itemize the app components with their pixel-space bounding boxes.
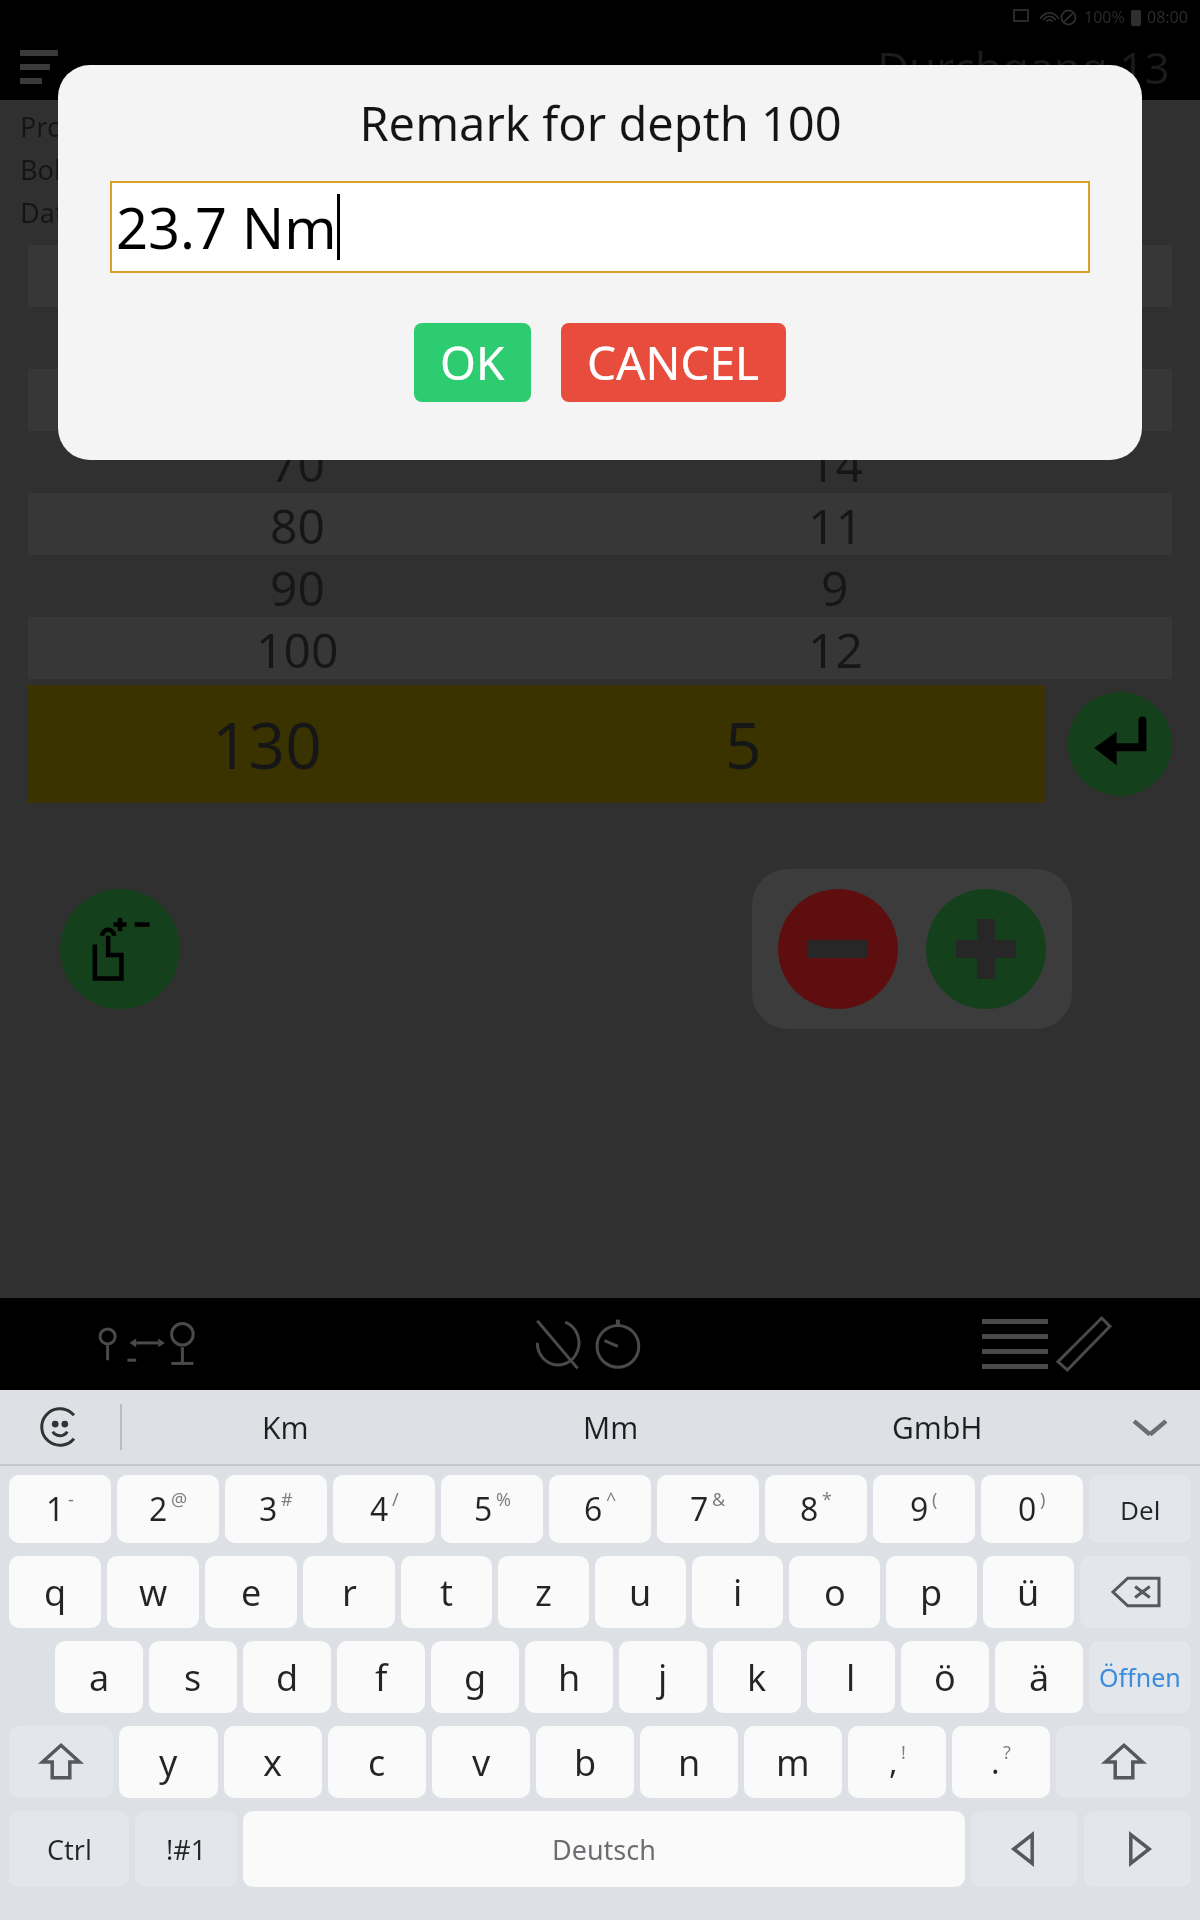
staticText: e	[241, 1568, 262, 1617]
button[interactable]: 2	[117, 1475, 219, 1543]
button[interactable]: OK	[414, 323, 531, 402]
button[interactable]: g	[431, 1641, 519, 1713]
button[interactable]: 8	[765, 1475, 867, 1543]
button[interactable]: 23.7 Nm	[110, 181, 1090, 273]
button[interactable]: ü	[983, 1556, 1074, 1628]
staticText: 3	[259, 1487, 278, 1531]
staticText: b	[574, 1738, 597, 1787]
button[interactable]: Deutsch	[243, 1811, 965, 1887]
staticText: Datum	[20, 194, 107, 231]
button[interactable]: ä	[995, 1641, 1083, 1713]
button[interactable]: Mm	[448, 1390, 774, 1464]
button[interactable]: .	[952, 1726, 1050, 1798]
staticText: 9	[821, 555, 849, 617]
button[interactable]: !#1	[135, 1811, 237, 1887]
button[interactable]: 0	[981, 1475, 1083, 1543]
staticText: 8	[821, 245, 849, 307]
button[interactable]: 130	[28, 685, 1046, 803]
button[interactable]: GmbH	[774, 1390, 1100, 1464]
other: Mute and timer	[535, 1315, 647, 1373]
button[interactable]: ö	[901, 1641, 989, 1713]
staticText: /	[392, 1487, 399, 1512]
button[interactable]: k	[713, 1641, 801, 1713]
button[interactable]: n	[640, 1726, 738, 1798]
button[interactable]: 100	[28, 617, 1172, 679]
staticText: Del	[1120, 1492, 1161, 1527]
button[interactable]: 3	[225, 1475, 327, 1543]
staticText: y	[159, 1738, 178, 1787]
button[interactable]: s	[149, 1641, 237, 1713]
button[interactable]: h	[525, 1641, 613, 1713]
staticText: Probe	[20, 108, 96, 145]
staticText: 7	[690, 1487, 709, 1531]
button[interactable]: u	[595, 1556, 686, 1628]
staticText: h	[558, 1653, 581, 1702]
button[interactable]: b	[536, 1726, 634, 1798]
staticText: Deutsch	[552, 1831, 656, 1868]
button[interactable]: Emoji	[0, 1390, 120, 1464]
staticText: 40	[270, 245, 325, 307]
button[interactable]: r	[303, 1556, 395, 1628]
button[interactable]: ,	[848, 1726, 946, 1798]
button[interactable]: Move left	[971, 1811, 1078, 1887]
button[interactable]: Shift	[9, 1726, 113, 1798]
button[interactable]: l	[807, 1641, 895, 1713]
staticText: 2	[149, 1487, 168, 1531]
staticText: 100%	[1084, 6, 1125, 28]
button[interactable]: Collapse suggestions	[1100, 1390, 1200, 1464]
button[interactable]: 1	[9, 1475, 111, 1543]
button[interactable]: Edit text	[982, 1318, 1110, 1370]
button[interactable]: j	[619, 1641, 707, 1713]
button[interactable]: Del	[1089, 1475, 1191, 1543]
button[interactable]: Backspace	[1080, 1556, 1191, 1628]
button[interactable]: t	[401, 1556, 492, 1628]
button[interactable]: Move right	[1084, 1811, 1191, 1887]
button[interactable]: Km	[122, 1390, 448, 1464]
button[interactable]: c	[328, 1726, 426, 1798]
button[interactable]: 9	[873, 1475, 975, 1543]
button[interactable]: Adjust values	[60, 889, 180, 1009]
button[interactable]: 60	[28, 369, 1172, 431]
button[interactable]: Öffnen	[1089, 1641, 1191, 1713]
button[interactable]: f	[337, 1641, 425, 1713]
button[interactable]: o	[789, 1556, 880, 1628]
button[interactable]: Ctrl	[9, 1811, 129, 1887]
button[interactable]: 6	[549, 1475, 651, 1543]
staticText: m	[776, 1738, 810, 1787]
button[interactable]: v	[432, 1726, 530, 1798]
button[interactable]: Enter	[1068, 692, 1172, 796]
staticText: 6	[584, 1487, 603, 1531]
button[interactable]: y	[119, 1726, 218, 1798]
staticText: n	[678, 1738, 701, 1787]
button[interactable]: Shift	[1056, 1726, 1191, 1798]
button[interactable]: w	[107, 1556, 199, 1628]
button[interactable]: 5	[441, 1475, 543, 1543]
button[interactable]: 40	[28, 245, 1172, 307]
button[interactable]: Increase	[926, 889, 1046, 1009]
staticText: &	[712, 1487, 726, 1512]
staticText: ^	[606, 1487, 617, 1512]
button[interactable]: a	[55, 1641, 143, 1713]
staticText: w	[139, 1568, 168, 1617]
button[interactable]: CANCEL	[561, 323, 786, 402]
staticText: 90	[270, 555, 325, 617]
button[interactable]: i	[692, 1556, 783, 1628]
button[interactable]: q	[9, 1556, 101, 1628]
button[interactable]: 4	[333, 1475, 435, 1543]
button[interactable]: d	[243, 1641, 331, 1713]
button[interactable]: p	[886, 1556, 977, 1628]
button[interactable]: m	[744, 1726, 842, 1798]
staticText: s	[184, 1653, 202, 1702]
button[interactable]: x	[224, 1726, 322, 1798]
button[interactable]: z	[498, 1556, 589, 1628]
staticText: r	[342, 1568, 357, 1617]
button[interactable]: 50	[28, 307, 1172, 369]
button[interactable]: 70	[28, 431, 1172, 493]
button[interactable]: 80	[28, 493, 1172, 555]
button[interactable]: Decrease	[778, 889, 898, 1009]
button[interactable]: 7	[657, 1475, 759, 1543]
button[interactable]: e	[205, 1556, 297, 1628]
